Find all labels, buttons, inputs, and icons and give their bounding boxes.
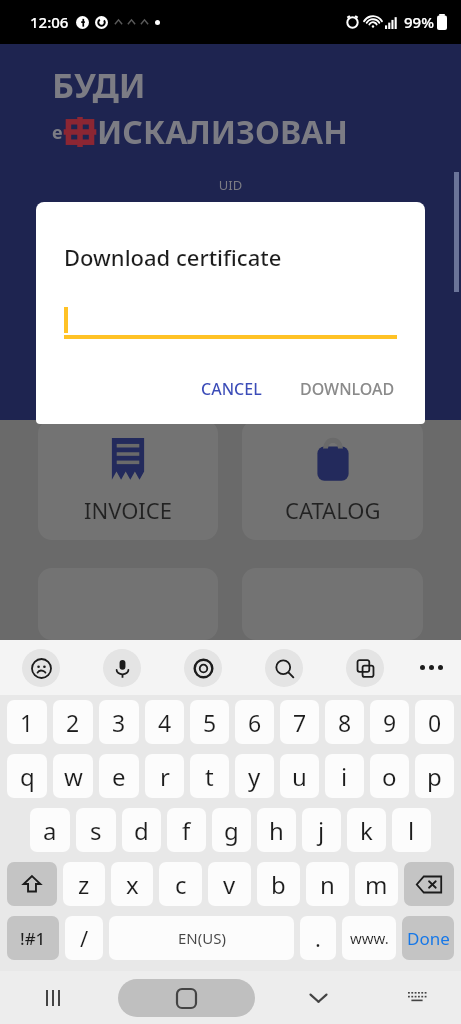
staticText: y [248,760,261,793]
button[interactable]: n [306,862,349,906]
staticText: UID [0,176,461,194]
button[interactable]: r [145,754,184,798]
button[interactable]: 3 [99,700,139,744]
staticText: x [126,868,139,901]
button[interactable]: c [159,862,202,906]
button[interactable]: EN(US) [109,916,294,960]
button[interactable]: Translate [346,649,384,687]
staticText: j [318,814,325,847]
staticText: h [269,814,284,847]
button[interactable]: DOWNLOAD [288,370,407,408]
button[interactable]: 7 [280,700,319,744]
staticText: !#1 [20,927,46,950]
staticText: a [43,814,57,847]
button[interactable]: Home [118,979,255,1017]
staticText: q [20,760,35,793]
staticText: u [292,760,307,793]
staticText: . [315,923,321,953]
button[interactable]: w [53,754,93,798]
staticText: 9 [383,707,397,738]
button[interactable]: i [325,754,364,798]
button[interactable]: 8 [325,700,364,744]
button[interactable]: t [190,754,229,798]
button[interactable] [64,306,397,342]
staticText: Download certificate [64,242,282,272]
staticText: 8 [338,707,352,738]
button[interactable]: p [415,754,454,798]
staticText: e [112,760,126,793]
button[interactable]: z [63,862,105,906]
button[interactable]: Backspace [404,862,454,906]
staticText: g [224,814,239,847]
button[interactable]: 2 [53,700,93,744]
button[interactable]: y [235,754,274,798]
button[interactable]: Recents [0,971,109,1024]
button[interactable]: l [392,808,431,852]
staticText: DOWNLOAD [300,378,395,400]
button[interactable]: INVOICE [38,420,218,540]
button[interactable]: Emoji [22,649,60,687]
button[interactable]: / [65,916,103,960]
staticText: 0 [428,707,442,738]
staticText: 1 [20,707,34,738]
button[interactable]: q [7,754,47,798]
button[interactable] [36,202,425,242]
staticText: 12:06 [30,12,69,32]
button[interactable]: Search [265,649,303,687]
staticText: Done [407,927,450,950]
button[interactable]: g [212,808,251,852]
staticText: ИСКАЛИЗОВАН [97,110,348,154]
button[interactable]: f [167,808,206,852]
button[interactable]: Done [402,916,454,960]
button[interactable]: 5 [190,700,229,744]
button[interactable]: d [122,808,161,852]
button[interactable]: a [30,808,70,852]
staticText: t [205,760,214,793]
staticText: 6 [248,707,262,738]
staticText: CATALOG [285,495,381,525]
staticText: 99% [404,12,434,32]
staticText: r [160,760,170,793]
button[interactable]: CANCEL [189,370,274,408]
button[interactable]: u [280,754,319,798]
button[interactable]: 4 [145,700,184,744]
button[interactable]: x [111,862,153,906]
staticText: 2 [66,707,80,738]
button[interactable]: Settings [184,649,222,687]
button[interactable]: e [99,754,139,798]
button[interactable]: 9 [370,700,409,744]
staticText: s [90,814,102,847]
button[interactable]: v [208,862,251,906]
button[interactable]: o [370,754,409,798]
button[interactable]: h [257,808,296,852]
staticText: 7 [293,707,307,738]
button[interactable]: 6 [235,700,274,744]
button[interactable]: j [302,808,341,852]
button[interactable]: CATALOG [242,420,423,540]
staticText: е [52,120,63,145]
staticText: EN(US) [178,928,226,948]
staticText: z [78,868,90,901]
button[interactable]: . [300,916,336,960]
staticText: k [360,814,373,847]
button[interactable]: 0 [415,700,454,744]
button[interactable]: www. [342,916,396,960]
staticText: 3 [112,707,126,738]
button[interactable]: More options [405,640,461,695]
button[interactable]: s [76,808,116,852]
staticText: 5 [203,707,217,738]
button[interactable]: b [257,862,300,906]
staticText: 4 [158,707,172,738]
button[interactable]: Shift [7,862,57,906]
staticText: f [182,814,191,847]
button[interactable]: Keyboard layout [373,971,461,1024]
button[interactable]: k [347,808,386,852]
button[interactable]: m [355,862,398,906]
button[interactable]: 1 [7,700,47,744]
button[interactable]: !#1 [7,916,59,960]
button[interactable]: Hide keyboard [263,971,373,1024]
staticText: b [271,868,286,901]
button[interactable]: Voice input [103,649,141,687]
